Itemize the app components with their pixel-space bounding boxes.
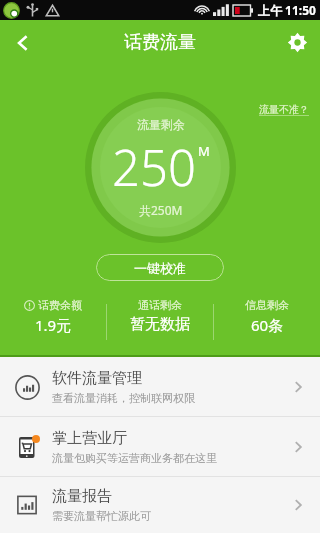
staticText: 流量不准？ — [259, 103, 309, 116]
staticText: 60条 — [251, 315, 284, 335]
staticText: 上午 11:50 — [258, 2, 316, 18]
staticText: 250 — [112, 134, 196, 201]
staticText: 流量包购买等运营商业务都在这里 — [52, 451, 217, 465]
button[interactable]: 流量不准？ — [256, 101, 312, 118]
staticText: M — [198, 142, 210, 160]
staticText: 一键校准 — [134, 260, 186, 276]
button[interactable]: 软件流量管理 — [0, 357, 320, 416]
staticText: 信息剩余 — [245, 298, 289, 312]
staticText: 1.9元 — [35, 315, 72, 335]
button[interactable]: 通话剩余 — [107, 298, 213, 334]
staticText: 软件流量管理 — [52, 369, 142, 388]
button[interactable]: 话费余额 — [0, 298, 106, 335]
button[interactable]: Settings — [275, 20, 320, 65]
staticText: 话费余额 — [38, 298, 82, 312]
staticText: 话费流量 — [124, 31, 196, 54]
button[interactable]: 掌上营业厅 — [0, 417, 320, 476]
button[interactable]: 流量报告 — [0, 477, 320, 533]
staticText: 需要流量帮忙源此可 — [52, 509, 151, 523]
staticText: 掌上营业厅 — [52, 429, 127, 448]
staticText: 查看流量消耗，控制联网权限 — [52, 391, 195, 405]
staticText: 通话剩余 — [138, 298, 182, 312]
staticText: 暂无数据 — [130, 315, 190, 334]
staticText: 共250M — [139, 202, 183, 218]
button[interactable]: 信息剩余 — [214, 298, 320, 335]
button[interactable]: 一键校准 — [96, 254, 224, 281]
button[interactable]: Back — [0, 20, 45, 65]
staticText: 流量报告 — [52, 487, 112, 506]
staticText: 流量剩余 — [137, 117, 185, 132]
